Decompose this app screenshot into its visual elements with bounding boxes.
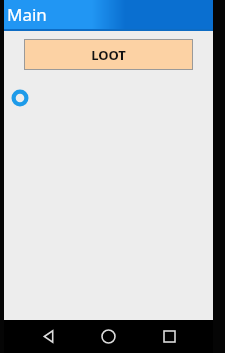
button[interactable]: Back <box>32 320 65 353</box>
button[interactable]: Recent apps <box>153 320 186 353</box>
staticText: LOOT <box>91 46 126 64</box>
button[interactable]: LOOT <box>24 39 193 70</box>
button[interactable]: Home <box>92 320 125 353</box>
staticText: Main <box>7 3 47 26</box>
button[interactable]: Radio button, selected <box>10 88 30 108</box>
